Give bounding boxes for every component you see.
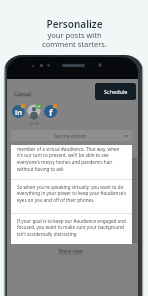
button[interactable]: LinkedIn <box>11 104 25 118</box>
staticText: Share now <box>58 248 83 255</box>
staticText: (21/4) <box>29 121 40 126</box>
staticText: in <box>15 107 23 117</box>
button[interactable]: Cancel <box>13 89 33 98</box>
button[interactable]: member of a virtual #audience. That way,… <box>11 146 132 172</box>
button[interactable]: Facebook <box>43 104 57 118</box>
staticText: Personalize <box>46 17 103 31</box>
button[interactable]: Get me started <box>11 130 132 141</box>
staticText: So when you're speaking virtually, you w… <box>17 184 127 203</box>
staticText: your posts with comment starters. <box>42 30 107 49</box>
staticText: f <box>49 106 53 118</box>
button[interactable]: Share now <box>57 247 84 256</box>
button[interactable]: Your profile <box>27 104 41 118</box>
staticText: Schedule <box>104 88 128 95</box>
staticText: member of a virtual #audience. That way,… <box>17 146 120 172</box>
button[interactable]: If your goal is to keep our #audience en… <box>11 218 132 237</box>
button[interactable]: So when you're speaking virtually, you w… <box>11 184 132 203</box>
staticText: If your goal is to keep our #audience en… <box>17 218 126 237</box>
staticText: Cancel <box>14 90 32 97</box>
staticText: Get me started <box>54 133 86 139</box>
button[interactable]: Schedule <box>95 83 136 100</box>
